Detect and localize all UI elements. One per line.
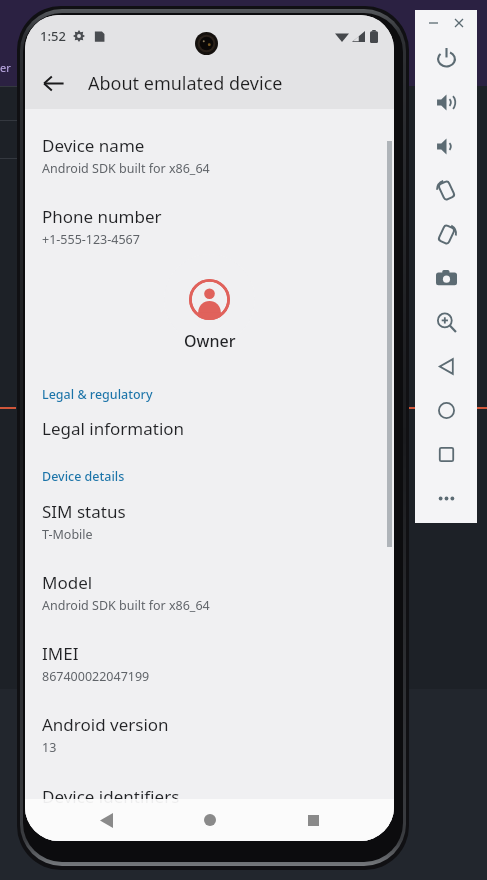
staticText: Device details — [42, 468, 125, 485]
staticText: SIM status — [42, 500, 126, 523]
staticText: T-Mobile — [42, 526, 93, 543]
staticText: er — [0, 60, 11, 75]
button[interactable]: Volume up — [415, 80, 477, 124]
button[interactable]: IMEI — [25, 629, 394, 700]
button[interactable]: More — [415, 476, 477, 520]
staticText: Device identifiers — [42, 785, 180, 808]
button[interactable]: Back — [415, 344, 477, 388]
button[interactable]: Minimize — [424, 14, 442, 32]
button[interactable]: Overview — [415, 432, 477, 476]
button[interactable]: Home — [187, 799, 233, 841]
staticText: 867400022047199 — [42, 668, 150, 685]
button[interactable]: Home — [415, 388, 477, 432]
button[interactable]: SIM status — [25, 487, 394, 558]
staticText: Model — [42, 571, 93, 594]
staticText: Android SDK built for x86_64 — [42, 597, 210, 614]
staticText: 1:52 — [40, 27, 66, 45]
button[interactable]: Android version — [25, 700, 394, 771]
button[interactable]: Screenshot — [415, 256, 477, 300]
button[interactable]: Power — [415, 36, 477, 80]
staticText: Owner — [184, 330, 236, 352]
staticText: Legal information — [42, 417, 185, 440]
button[interactable]: Back — [83, 799, 129, 841]
button[interactable]: Device identifiers — [25, 771, 394, 808]
button[interactable]: Close — [450, 14, 468, 32]
staticText: About emulated device — [88, 71, 283, 96]
button[interactable]: Recents — [290, 799, 336, 841]
button[interactable]: Legal information — [25, 405, 394, 457]
staticText: Legal & regulatory — [42, 386, 153, 403]
staticText: Android SDK built for x86_64 — [42, 160, 210, 177]
button[interactable]: Back — [31, 61, 75, 105]
button[interactable]: Model — [25, 558, 394, 629]
staticText: Android version — [42, 713, 169, 736]
button[interactable]: Rotate right — [415, 212, 477, 256]
button[interactable]: Device name — [25, 121, 394, 192]
staticText: +1-555-123-4567 — [42, 231, 140, 248]
staticText: Phone number — [42, 205, 162, 228]
button[interactable]: Rotate left — [415, 168, 477, 212]
button[interactable]: Phone number — [25, 192, 394, 263]
staticText: 13 — [42, 739, 57, 756]
staticText: Device name — [42, 134, 145, 157]
button[interactable]: Volume down — [415, 124, 477, 168]
staticText: IMEI — [42, 642, 79, 665]
button[interactable]: Zoom — [415, 300, 477, 344]
